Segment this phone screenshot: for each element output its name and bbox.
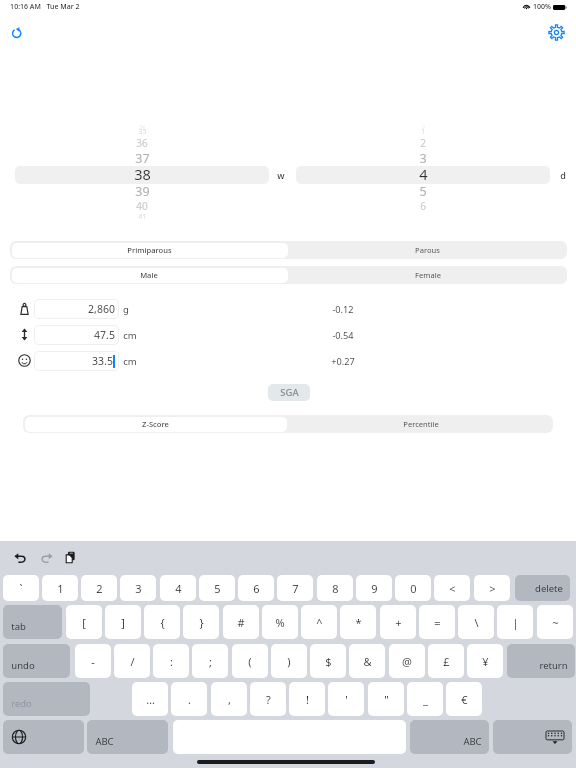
button[interactable]: - — [75, 644, 111, 678]
button[interactable]: ¥ — [467, 644, 503, 678]
staticText: / — [130, 654, 135, 669]
button[interactable]: Weight — [18, 302, 31, 315]
button[interactable] — [296, 166, 550, 184]
button[interactable]: Length — [18, 328, 31, 341]
button[interactable] — [15, 166, 269, 184]
button[interactable]: ; — [192, 644, 228, 678]
button[interactable]: … — [132, 682, 168, 716]
button[interactable]: Paste — [60, 547, 80, 567]
staticText: _ — [423, 692, 428, 707]
staticText: ` — [19, 581, 23, 596]
button[interactable]: tab — [3, 605, 62, 639]
button[interactable]: % — [262, 605, 298, 639]
staticText: } — [199, 615, 204, 630]
button[interactable]: * — [340, 605, 376, 639]
button[interactable]: $ — [310, 644, 346, 678]
button[interactable]: ~ — [537, 605, 573, 639]
staticText: redo — [11, 697, 32, 710]
button[interactable]: ? — [250, 682, 286, 716]
button[interactable]: = — [419, 605, 455, 639]
button[interactable]: ' — [328, 682, 364, 716]
button[interactable]: [ — [66, 605, 102, 639]
button[interactable]: > — [474, 575, 510, 601]
button[interactable]: 3 — [120, 575, 156, 601]
staticText: ^ — [316, 615, 323, 630]
staticText: -0.54 — [332, 329, 354, 342]
staticText: 6 — [420, 199, 426, 213]
staticText: 7 — [292, 581, 299, 596]
button[interactable]: undo — [3, 644, 70, 678]
button[interactable]: Undo — [10, 547, 30, 567]
staticText: \ — [474, 615, 479, 630]
button[interactable]: ! — [289, 682, 325, 716]
staticText: 8 — [332, 581, 339, 596]
button[interactable]: 6 — [238, 575, 274, 601]
button[interactable]: ABC — [410, 720, 489, 754]
button[interactable]: Next keyboard — [3, 720, 84, 754]
button[interactable]: \ — [458, 605, 494, 639]
button[interactable]: < — [434, 575, 470, 601]
button[interactable]: 33.5 — [34, 351, 119, 371]
button[interactable]: 9 — [356, 575, 392, 601]
button[interactable]: , — [211, 682, 247, 716]
staticText: 4 — [175, 581, 182, 596]
button[interactable]: 7 — [277, 575, 313, 601]
button[interactable]: @ — [389, 644, 425, 678]
button[interactable]: ABC — [87, 720, 168, 754]
button[interactable]: : — [153, 644, 189, 678]
button[interactable]: £ — [428, 644, 464, 678]
button[interactable]: _ — [407, 682, 443, 716]
staticText: 47.5 — [94, 328, 115, 342]
button[interactable]: / — [114, 644, 150, 678]
staticText: ) — [287, 654, 291, 669]
button[interactable]: Z-Score — [23, 415, 288, 433]
staticText: +0.27 — [331, 355, 355, 368]
button[interactable]: 8 — [317, 575, 353, 601]
staticText: 1 — [421, 127, 426, 137]
button[interactable]: # — [223, 605, 259, 639]
staticText: ABC — [95, 735, 114, 748]
button[interactable]: € — [446, 682, 482, 716]
button[interactable]: Dismiss keyboard — [493, 720, 572, 754]
button[interactable]: Settings — [546, 22, 567, 43]
button[interactable]: ] — [105, 605, 141, 639]
button[interactable]: SGA — [268, 384, 310, 401]
button[interactable]: & — [349, 644, 385, 678]
button[interactable]: return — [507, 644, 575, 678]
button[interactable]: 4 — [160, 575, 196, 601]
button[interactable]: 47.5 — [34, 325, 119, 345]
staticText: 34 — [139, 124, 145, 131]
staticText: … — [146, 692, 155, 707]
button[interactable]: Female — [288, 266, 567, 284]
button[interactable]: 5 — [199, 575, 235, 601]
staticText: = — [434, 615, 441, 630]
button[interactable]: Primiparous — [10, 241, 288, 259]
button[interactable]: 1 — [42, 575, 78, 601]
button[interactable]: Male — [10, 266, 288, 284]
button[interactable]: { — [144, 605, 180, 639]
button[interactable]: Head circumference — [18, 354, 31, 367]
staticText: SGA — [280, 386, 299, 399]
button[interactable]: Parous — [288, 241, 567, 259]
staticText: -0.12 — [332, 303, 354, 316]
button[interactable]: + — [380, 605, 416, 639]
staticText: * — [355, 615, 362, 630]
button[interactable]: } — [183, 605, 219, 639]
button[interactable]: Redo — [36, 547, 56, 567]
button[interactable]: ) — [271, 644, 307, 678]
button[interactable]: 2 — [81, 575, 117, 601]
staticText: 5 — [214, 581, 221, 596]
button[interactable]: 2,860 — [34, 299, 119, 319]
button[interactable]: redo — [3, 682, 90, 716]
button[interactable]: ( — [232, 644, 268, 678]
button[interactable]: ` — [3, 575, 39, 601]
button[interactable]: . — [171, 682, 207, 716]
button[interactable]: ^ — [301, 605, 337, 639]
button[interactable]: Percentile — [288, 415, 553, 433]
button[interactable]: | — [497, 605, 533, 639]
button[interactable]: Reset — [7, 23, 25, 41]
button[interactable]: " — [368, 682, 404, 716]
button[interactable]: 0 — [395, 575, 431, 601]
button[interactable]: delete — [515, 575, 570, 601]
